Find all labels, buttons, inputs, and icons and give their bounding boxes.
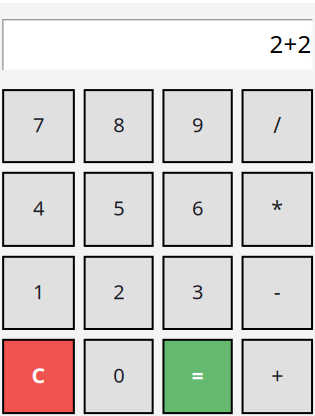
staticText: 5 bbox=[113, 195, 124, 221]
staticText: 2+2 bbox=[269, 28, 311, 60]
staticText: 8 bbox=[113, 111, 124, 138]
staticText: 7 bbox=[33, 111, 44, 138]
button[interactable]: - bbox=[243, 257, 312, 329]
button[interactable]: C bbox=[3, 340, 74, 413]
staticText: 9 bbox=[192, 111, 203, 138]
button[interactable]: 4 bbox=[3, 173, 74, 246]
staticText: 2 bbox=[113, 278, 124, 305]
button[interactable]: * bbox=[243, 173, 312, 246]
button[interactable]: 7 bbox=[3, 90, 74, 162]
staticText: 3 bbox=[192, 278, 203, 305]
staticText: - bbox=[274, 277, 281, 305]
staticText: 1 bbox=[33, 278, 44, 305]
button[interactable]: / bbox=[243, 90, 312, 162]
staticText: = bbox=[192, 361, 204, 389]
button[interactable]: + bbox=[243, 340, 312, 413]
staticText: / bbox=[273, 110, 281, 139]
button[interactable]: 3 bbox=[163, 257, 232, 329]
button[interactable]: = bbox=[163, 340, 232, 413]
button[interactable]: 5 bbox=[85, 173, 153, 246]
staticText: C bbox=[31, 361, 45, 389]
staticText: 0 bbox=[113, 362, 124, 388]
staticText: * bbox=[271, 194, 283, 222]
staticText: 6 bbox=[192, 195, 203, 221]
button[interactable]: 6 bbox=[163, 173, 232, 246]
button[interactable]: 8 bbox=[85, 90, 153, 162]
button[interactable]: 2 bbox=[85, 257, 153, 329]
staticText: 4 bbox=[33, 195, 44, 221]
button[interactable]: 0 bbox=[85, 340, 153, 413]
staticText: + bbox=[271, 361, 283, 389]
button[interactable]: 9 bbox=[163, 90, 232, 162]
button[interactable]: 1 bbox=[3, 257, 74, 329]
